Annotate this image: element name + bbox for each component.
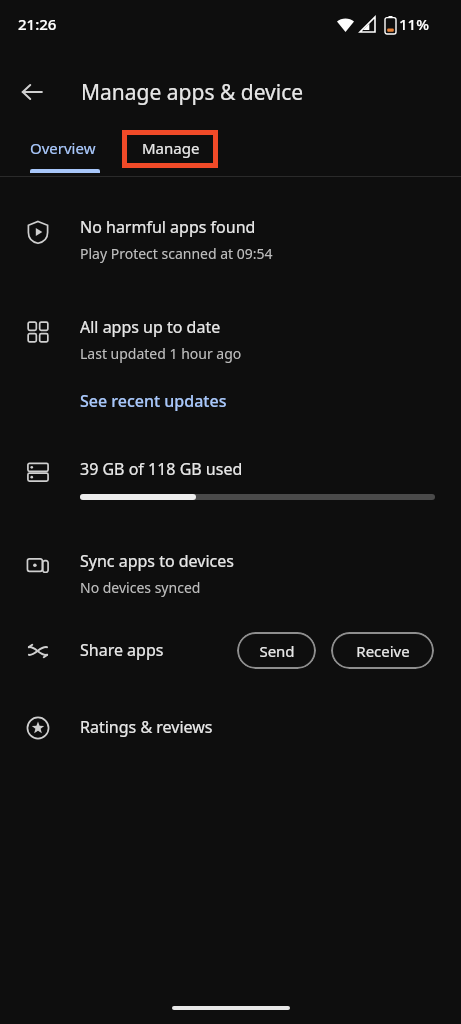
staticText: Play Protect scanned at 09:54 [80, 244, 273, 263]
button[interactable]: Ratings & reviews [0, 703, 461, 753]
staticText: Send [259, 641, 295, 661]
staticText: No devices synced [80, 578, 201, 597]
staticText: Overview [30, 138, 96, 158]
button[interactable]: All apps up to date [0, 308, 461, 378]
button[interactable]: Sync apps to devices [0, 542, 461, 612]
staticText: Share apps [80, 639, 164, 661]
button[interactable]: Back [8, 68, 56, 116]
button[interactable]: Overview [14, 125, 112, 171]
button[interactable]: Send [237, 632, 316, 669]
staticText: 11% [399, 14, 429, 34]
staticText: No harmful apps found [80, 216, 256, 238]
staticText: Manage [142, 138, 200, 158]
button[interactable]: Receive [331, 632, 434, 669]
staticText: Sync apps to devices [80, 550, 234, 572]
button[interactable]: 39 GB of 118 GB used [0, 446, 461, 518]
staticText: Manage apps & device [81, 78, 304, 107]
button[interactable]: No harmful apps found [0, 208, 461, 278]
staticText: Last updated 1 hour ago [80, 344, 242, 363]
staticText: 39 GB of 118 GB used [80, 458, 243, 480]
staticText: See recent updates [80, 390, 227, 412]
staticText: Ratings & reviews [80, 716, 213, 738]
staticText: Receive [356, 641, 410, 661]
button[interactable]: See recent updates [80, 390, 227, 412]
staticText: All apps up to date [80, 316, 221, 338]
staticText: 21:26 [18, 14, 57, 34]
button[interactable]: Manage [126, 125, 216, 171]
